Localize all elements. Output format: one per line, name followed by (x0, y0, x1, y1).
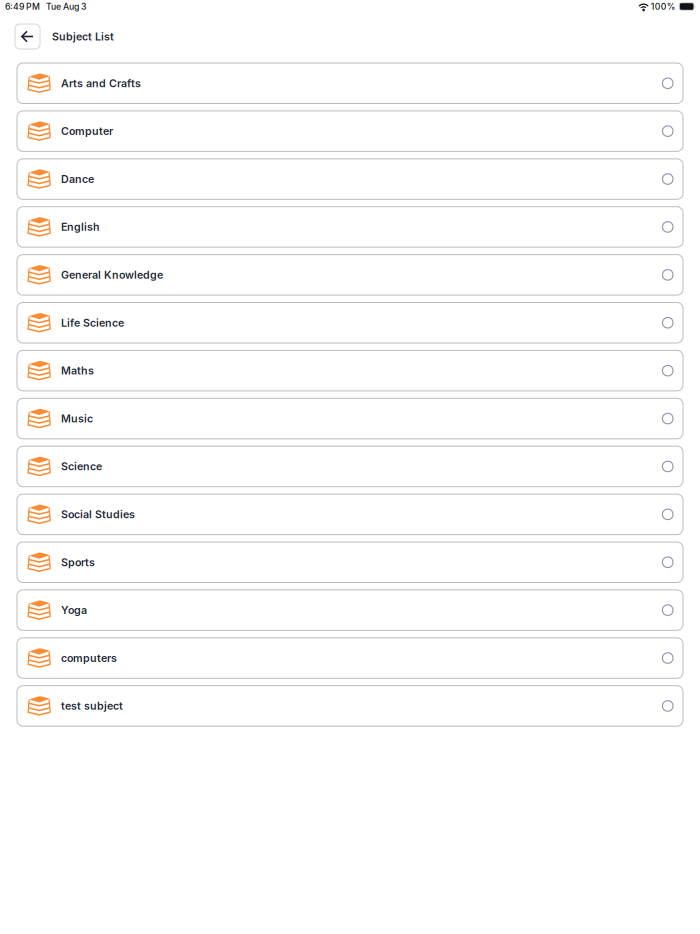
staticText: Science (61, 460, 102, 473)
button[interactable]: Sports (17, 542, 683, 582)
staticText: Yoga (61, 604, 87, 617)
staticText: General Knowledge (61, 268, 163, 281)
button[interactable]: computers (17, 638, 683, 678)
button[interactable]: Maths (17, 350, 683, 391)
button[interactable]: Life Science (17, 302, 683, 343)
button[interactable]: test subject (17, 686, 683, 726)
staticText: Social Studies (61, 508, 135, 521)
staticText: Arts and Crafts (61, 77, 141, 90)
staticText: English (61, 220, 100, 233)
staticText: Computer (61, 125, 113, 138)
staticText: 100% (651, 1, 676, 12)
staticText: 6:49 PM (5, 1, 40, 12)
button[interactable]: Back (15, 24, 40, 49)
button[interactable]: English (17, 207, 683, 247)
button[interactable]: Music (17, 398, 683, 439)
staticText: Maths (61, 364, 94, 377)
staticText: Tue Aug 3 (46, 1, 86, 12)
staticText: Music (61, 412, 93, 425)
staticText: computers (61, 652, 117, 664)
button[interactable]: Social Studies (17, 494, 683, 535)
staticText: Dance (61, 173, 94, 185)
button[interactable]: Dance (17, 159, 683, 199)
button[interactable]: General Knowledge (17, 255, 683, 295)
button[interactable]: Yoga (17, 590, 683, 630)
button[interactable]: Arts and Crafts (17, 63, 683, 103)
button[interactable]: Computer (17, 111, 683, 151)
staticText: Subject List (52, 30, 114, 43)
button[interactable]: Science (17, 446, 683, 487)
staticText: test subject (61, 699, 123, 712)
staticText: Life Science (61, 316, 124, 329)
staticText: Sports (61, 556, 95, 569)
